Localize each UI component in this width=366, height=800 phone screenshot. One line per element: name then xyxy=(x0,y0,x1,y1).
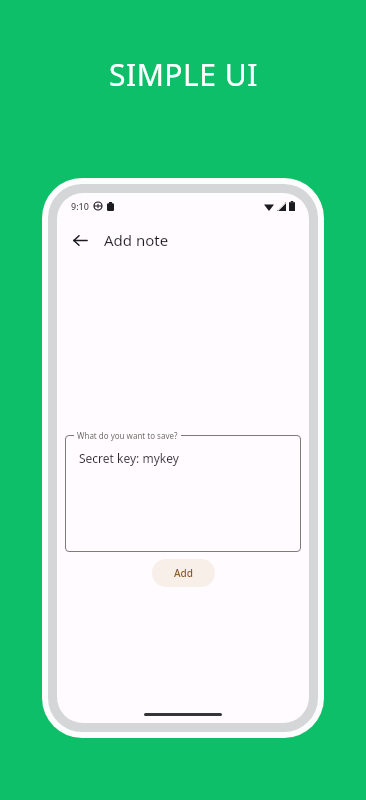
staticText: 9:10 xyxy=(71,200,89,212)
button[interactable]: Add xyxy=(152,559,215,587)
button[interactable] xyxy=(65,435,301,552)
staticText: Secret key: mykey xyxy=(79,450,179,466)
staticText: Add note xyxy=(104,230,169,250)
staticText: Add xyxy=(174,566,193,580)
staticText: What do you want to save? xyxy=(77,430,178,441)
staticText: SIMPLE UI xyxy=(109,54,258,95)
button[interactable]: Back xyxy=(64,224,96,256)
